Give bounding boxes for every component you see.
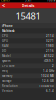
staticText: GPU (2, 39, 8, 43)
staticText: 3271 (46, 39, 54, 43)
button[interactable]: CPU (0, 33, 56, 38)
button[interactable]: RAM (0, 43, 56, 48)
button[interactable]: Memory (0, 73, 56, 78)
staticText: RAM (2, 44, 8, 48)
staticText: 100% (47, 0, 55, 2)
staticText: 1980 (46, 44, 54, 48)
staticText: 1334x750 (39, 84, 54, 88)
staticText: Memory (2, 74, 12, 78)
staticText: Model (2, 54, 11, 58)
button[interactable]: Version (0, 88, 56, 93)
staticText: System (2, 59, 10, 63)
button[interactable]: Resolution (0, 83, 56, 88)
staticText: I/O (2, 49, 6, 53)
staticText: Details (21, 3, 34, 8)
staticText: 1024 MB (41, 74, 54, 78)
staticText: 2116 (46, 49, 54, 53)
staticText: Carrier (1, 0, 10, 2)
staticText: 15481 (15, 10, 40, 22)
staticText: < (2, 2, 5, 9)
button[interactable]: GPU (0, 38, 56, 43)
staticText: 12.6 GB (42, 79, 54, 83)
button[interactable]: iPhone (0, 23, 56, 28)
button[interactable]: Freq (0, 68, 56, 73)
button[interactable]: Back (0, 2, 7, 8)
staticText: iOS 9.1 (44, 59, 54, 63)
staticText: Storage (2, 79, 12, 83)
staticText: Version (2, 89, 13, 93)
staticText: 2114 (46, 34, 54, 38)
staticText: Multitask (2, 29, 15, 33)
button[interactable]: I/O (0, 48, 56, 53)
button[interactable]: System (0, 58, 56, 63)
staticText: 1.4 GHz (43, 69, 54, 73)
staticText: 6.1.4 (46, 89, 54, 93)
button[interactable]: Model (0, 53, 56, 58)
staticText: 9:41 (25, 0, 32, 2)
staticText: Resolution (2, 84, 18, 88)
button[interactable]: Storage (0, 78, 56, 83)
button[interactable]: CPU core (0, 63, 56, 68)
staticText: CPU core (2, 64, 15, 68)
button[interactable]: Multitask (0, 28, 56, 33)
staticText: Freq (2, 69, 8, 73)
staticText: iPhone (2, 24, 13, 28)
staticText: 2 (52, 64, 54, 68)
staticText: CPU (2, 34, 8, 38)
staticText: A1522 (44, 54, 54, 58)
